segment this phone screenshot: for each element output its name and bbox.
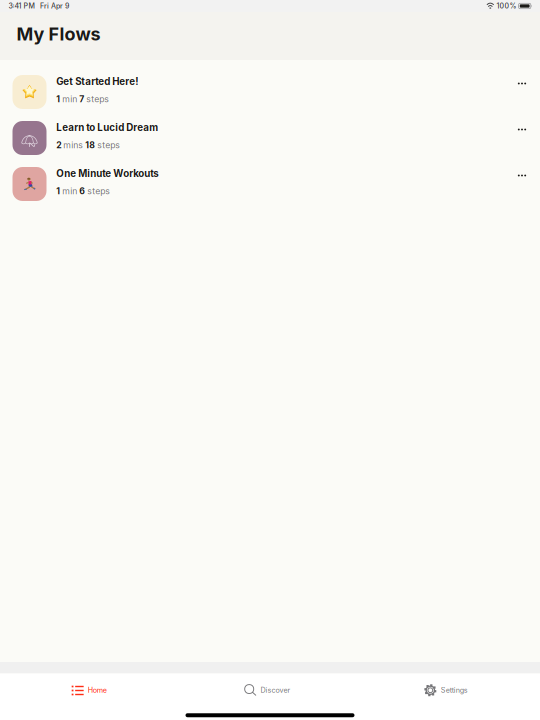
staticText: mins: [61, 140, 85, 150]
staticText: min: [60, 94, 79, 104]
staticText: steps: [84, 94, 109, 104]
staticText: steps: [95, 140, 120, 150]
button[interactable]: Learn to Lucid Dream: [0, 115, 540, 161]
staticText: Discover: [261, 686, 291, 695]
staticText: Home: [88, 686, 107, 695]
staticText: 3:41 PM: [8, 2, 34, 10]
staticText: steps: [85, 186, 110, 196]
staticText: min: [60, 186, 79, 196]
button[interactable]: Discover: [178, 675, 357, 705]
staticText: Learn to Lucid Dream: [56, 122, 158, 133]
staticText: 100%: [497, 2, 517, 10]
staticText: One Minute Workouts: [56, 168, 158, 179]
button[interactable]: Get Started Here!: [0, 69, 540, 115]
staticText: 1: [56, 186, 60, 196]
button[interactable]: More options: [504, 111, 540, 147]
button[interactable]: More options: [504, 157, 540, 193]
staticText: 2: [56, 140, 61, 150]
staticText: Get Started Here!: [56, 76, 138, 87]
button[interactable]: Settings: [357, 675, 535, 705]
staticText: 18: [85, 140, 95, 150]
button[interactable]: Home: [0, 675, 178, 705]
staticText: Fri Apr 9: [40, 2, 69, 10]
button[interactable]: One Minute Workouts: [0, 161, 540, 207]
button[interactable]: More options: [504, 65, 540, 101]
staticText: 1: [56, 94, 60, 104]
staticText: My Flows: [16, 23, 100, 45]
staticText: 7: [79, 94, 84, 104]
staticText: 6: [79, 186, 85, 196]
staticText: Settings: [441, 686, 468, 695]
